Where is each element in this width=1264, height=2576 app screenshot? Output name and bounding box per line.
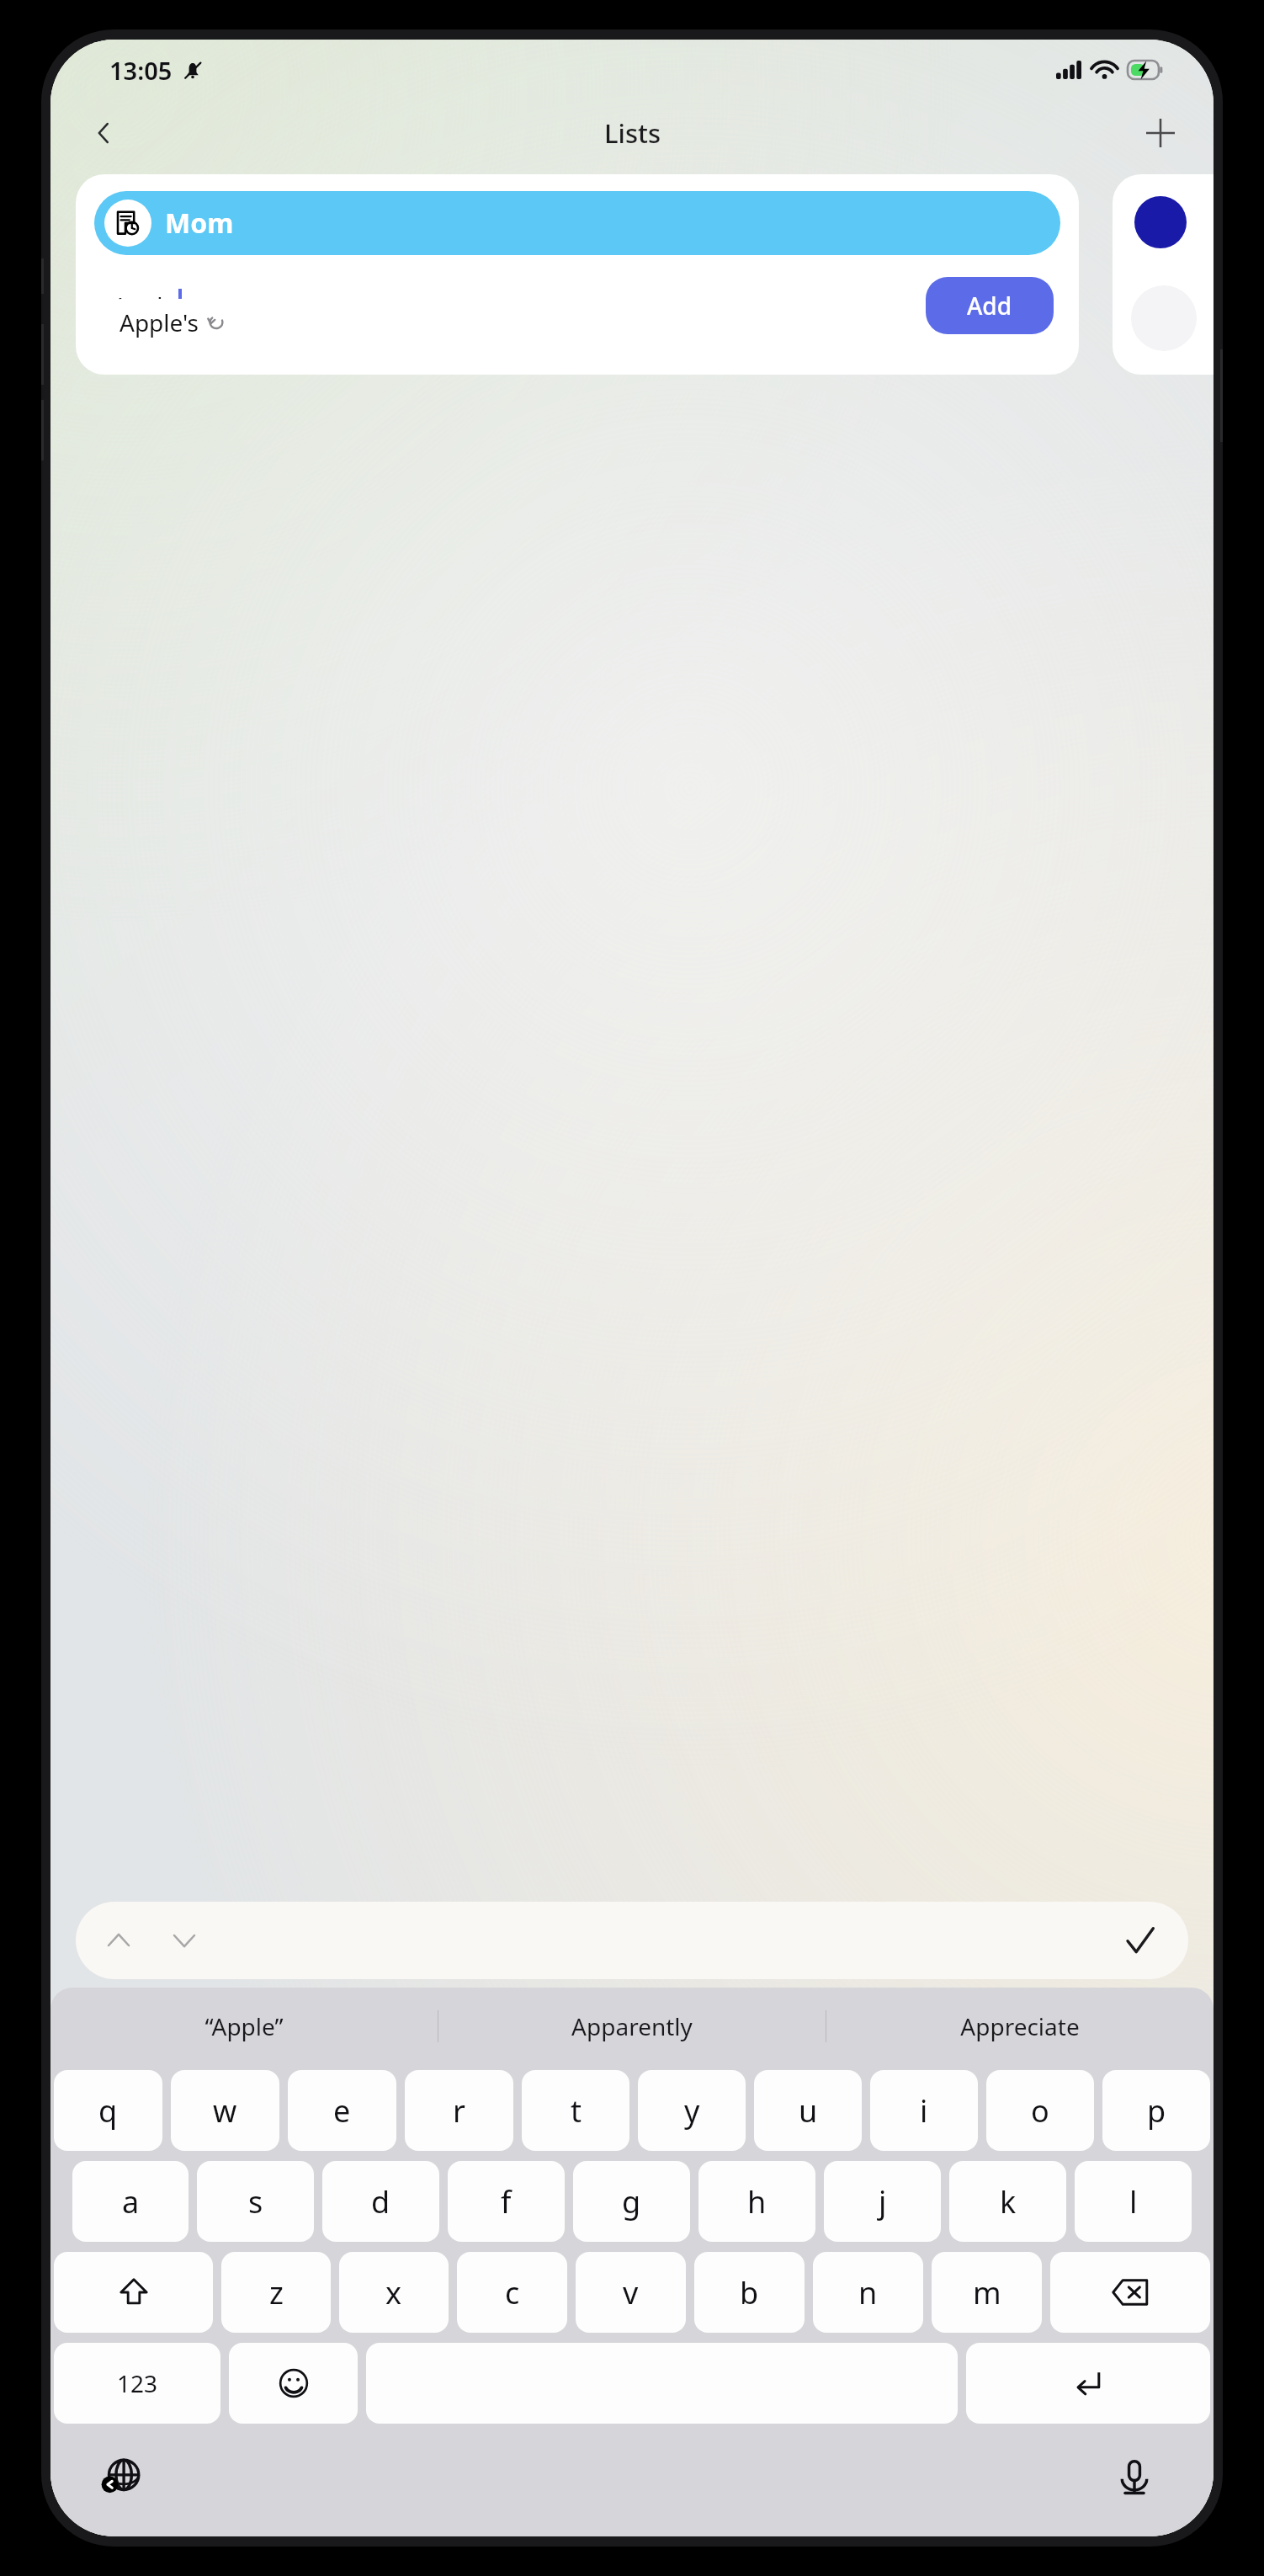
button[interactable]: o — [986, 2070, 1094, 2151]
staticText: m — [973, 2272, 1001, 2313]
button[interactable]: Back — [79, 109, 128, 157]
button[interactable]: q — [54, 2070, 162, 2151]
staticText: t — [571, 2090, 582, 2132]
staticText: Add — [967, 290, 1012, 322]
staticText: 13:05 — [109, 54, 173, 87]
staticText: d — [371, 2181, 390, 2222]
button[interactable]: g — [573, 2161, 690, 2242]
staticText: c — [505, 2272, 520, 2313]
button[interactable]: r — [405, 2070, 513, 2151]
staticText: Apparently — [571, 2010, 693, 2042]
button[interactable]: n — [813, 2252, 923, 2333]
staticText: b — [740, 2272, 759, 2313]
button[interactable]: “Apple” — [50, 1988, 438, 2065]
button[interactable]: u — [754, 2070, 862, 2151]
button[interactable]: b — [694, 2252, 805, 2333]
button[interactable]: t — [522, 2070, 629, 2151]
button[interactable]: Emoji — [229, 2343, 358, 2424]
staticText: 123 — [117, 2367, 158, 2399]
staticText: e — [333, 2090, 351, 2132]
staticText: Lists — [604, 115, 661, 151]
button[interactable]: 123 — [54, 2343, 220, 2424]
button[interactable]: Backspace — [1050, 2252, 1210, 2333]
button[interactable]: l — [1075, 2161, 1192, 2242]
staticText: o — [1031, 2090, 1049, 2132]
button[interactable]: i — [870, 2070, 978, 2151]
button[interactable]: f — [448, 2161, 565, 2242]
staticText: Appreciate — [960, 2010, 1080, 2042]
staticText: k — [1000, 2181, 1017, 2222]
button[interactable]: Dictation — [1102, 2446, 1166, 2509]
staticText: Mom — [165, 205, 234, 242]
staticText: l — [1129, 2181, 1138, 2222]
button[interactable]: k — [949, 2161, 1066, 2242]
button[interactable]: a — [72, 2161, 189, 2242]
button[interactable]: j — [824, 2161, 941, 2242]
staticText: u — [799, 2090, 818, 2132]
staticText: Apple — [113, 290, 177, 322]
button[interactable]: Mom — [94, 191, 1060, 255]
button[interactable]: Apple's — [106, 299, 239, 346]
staticText: r — [453, 2090, 465, 2132]
button[interactable]: h — [698, 2161, 815, 2242]
button[interactable]: c — [457, 2252, 567, 2333]
staticText: x — [385, 2272, 402, 2313]
button[interactable]: Add list — [1136, 109, 1185, 157]
button[interactable]: Shift — [54, 2252, 213, 2333]
button[interactable]: d — [322, 2161, 439, 2242]
button[interactable]: Return — [966, 2343, 1210, 2424]
staticText: “Apple” — [204, 2010, 284, 2042]
staticText: p — [1147, 2090, 1166, 2132]
button[interactable]: Done — [1113, 1913, 1168, 1968]
button[interactable]: Appreciate — [826, 1988, 1214, 2065]
button[interactable]: x — [339, 2252, 449, 2333]
staticText: a — [122, 2181, 140, 2222]
button[interactable]: Add — [926, 277, 1054, 334]
button[interactable]: p — [1102, 2070, 1210, 2151]
button[interactable]: Apparently — [438, 1988, 826, 2065]
button[interactable]: m — [932, 2252, 1042, 2333]
staticText: v — [623, 2272, 639, 2313]
staticText: f — [501, 2181, 512, 2222]
button[interactable]: Mom — [76, 174, 1079, 375]
button[interactable]: Next field — [157, 1913, 212, 1968]
staticText: n — [858, 2272, 878, 2313]
button[interactable]: z — [221, 2252, 331, 2333]
staticText: s — [248, 2181, 263, 2222]
button[interactable] — [1113, 174, 1214, 375]
staticText: w — [213, 2090, 237, 2132]
staticText: h — [747, 2181, 767, 2222]
staticText: Apple's — [119, 306, 199, 338]
button[interactable]: Previous field — [91, 1913, 146, 1968]
button[interactable]: y — [638, 2070, 746, 2151]
button[interactable]: s — [197, 2161, 314, 2242]
staticText: y — [684, 2090, 700, 2132]
staticText: q — [98, 2090, 118, 2132]
staticText: i — [920, 2090, 928, 2132]
button[interactable]: Change keyboard language — [89, 2446, 153, 2509]
button[interactable]: e — [288, 2070, 396, 2151]
button[interactable]: w — [171, 2070, 279, 2151]
staticText: g — [622, 2181, 641, 2222]
staticText: j — [879, 2181, 887, 2222]
staticText: z — [269, 2272, 284, 2313]
button[interactable]: v — [576, 2252, 686, 2333]
